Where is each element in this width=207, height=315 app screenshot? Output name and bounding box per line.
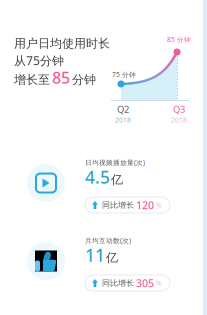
button[interactable]: 日均视频播放量 (0, 154, 202, 232)
staticText: 月均互动数(次) (85, 236, 131, 245)
staticText: 2018 (115, 115, 131, 124)
button[interactable]: 月均互动数 (0, 232, 202, 310)
staticText: 75 分钟 (112, 70, 136, 79)
staticText: 305 (136, 276, 154, 290)
staticText: Q3 (173, 103, 185, 115)
staticText: 11 (85, 243, 105, 266)
staticText: 同比增长 (98, 278, 136, 288)
staticText: 120 (136, 198, 154, 212)
staticText: 日均视频播放量(次) (85, 158, 145, 167)
staticText: 亿 (106, 250, 118, 265)
staticText: Q2 (117, 103, 129, 115)
staticText: 从75分钟 (14, 52, 64, 68)
staticText: 4.5 (85, 165, 110, 188)
staticText: 同比增长 (98, 200, 136, 210)
staticText: 85 (52, 67, 70, 88)
staticText: % (154, 201, 162, 209)
staticText: % (154, 279, 162, 287)
staticText: 2018 (171, 115, 187, 124)
staticText: 分钟 (72, 72, 96, 87)
staticText: 85 分钟 (167, 35, 191, 44)
staticText: 用户日均使用时长 (14, 36, 110, 51)
staticText: 增长至 (14, 72, 50, 87)
staticText: 亿 (111, 172, 123, 187)
